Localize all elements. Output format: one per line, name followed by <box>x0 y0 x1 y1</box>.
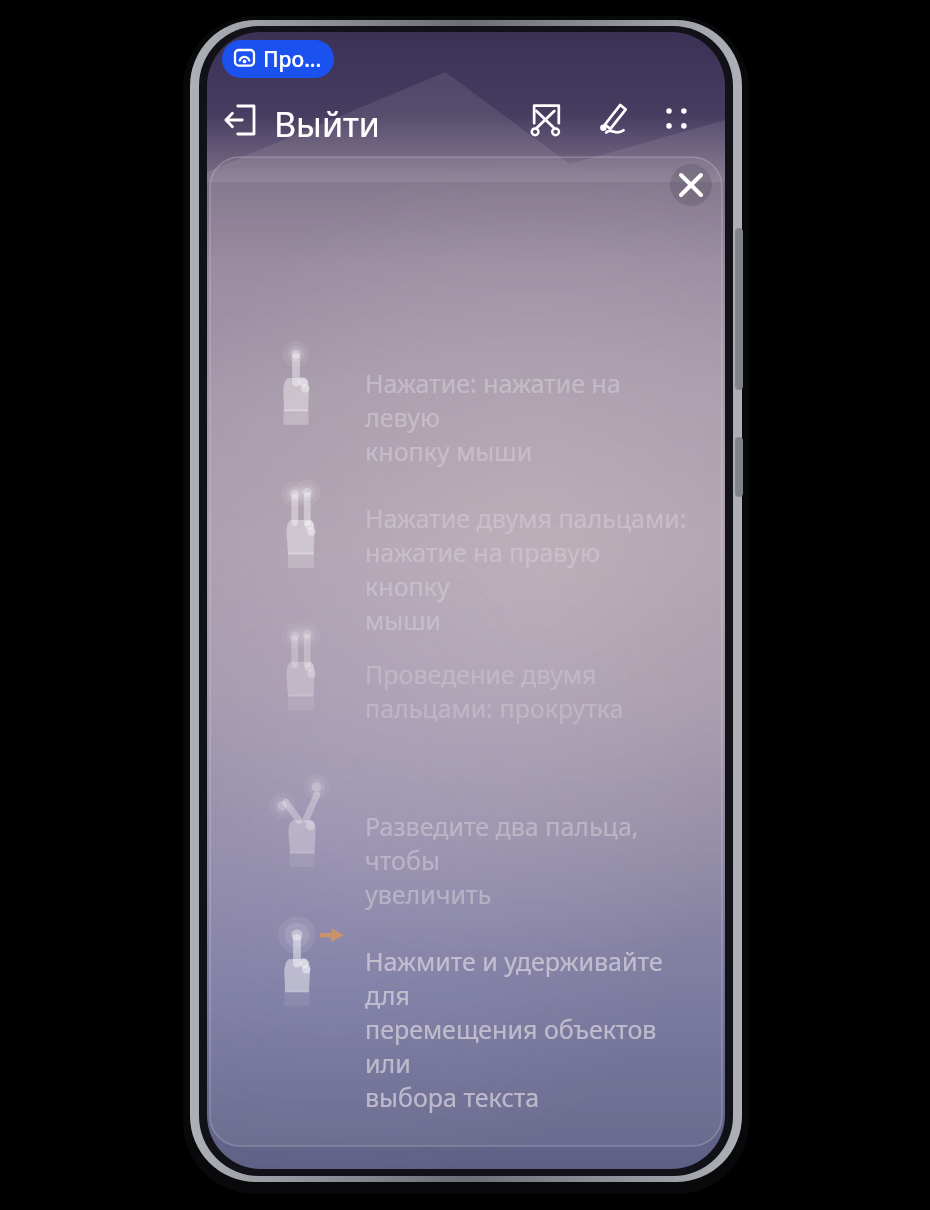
button[interactable]: Annotate <box>586 94 640 148</box>
staticText: Проведение двумя пальцами: прокрутка <box>365 657 690 725</box>
staticText: Разведите два пальца, чтобы увеличить <box>365 809 690 911</box>
button[interactable]: Close <box>668 162 714 208</box>
staticText: Нажатие двумя пальцами: нажатие на праву… <box>365 501 690 637</box>
button[interactable]: Screenshot <box>520 94 574 148</box>
button[interactable]: Exit <box>216 96 394 150</box>
staticText: Нажмите и удерживайте для перемещения об… <box>365 944 690 1114</box>
staticText: Нажатие: нажатие на левую кнопку мыши <box>365 366 690 468</box>
staticText: Выйти <box>274 101 380 147</box>
staticText: Про... <box>263 45 322 74</box>
button[interactable]: More options <box>652 94 706 148</box>
button[interactable]: Projecting <box>222 40 334 78</box>
